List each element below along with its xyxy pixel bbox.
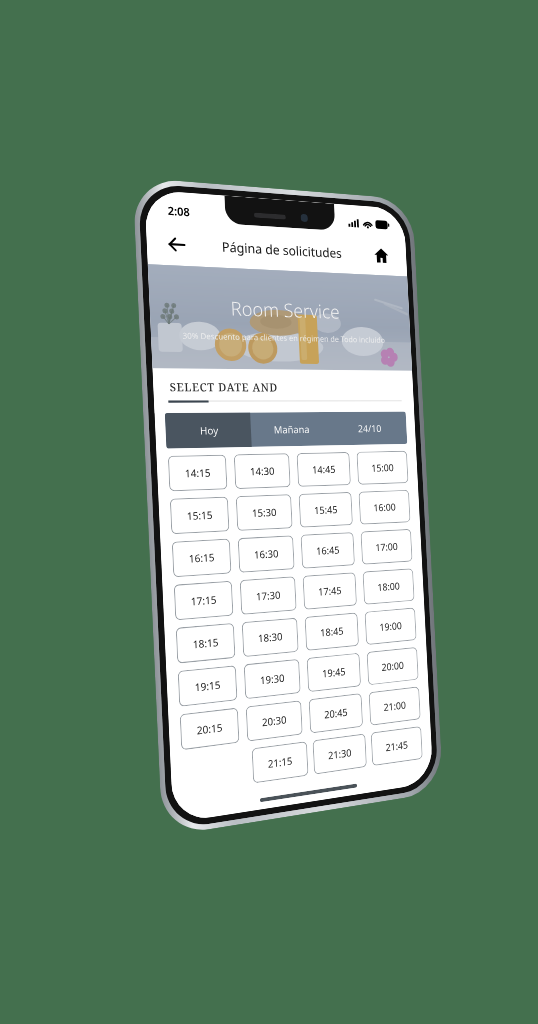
- button[interactable]: 20:30: [246, 700, 303, 742]
- button[interactable]: 17:00: [360, 529, 413, 565]
- staticText: 16:15: [188, 550, 215, 566]
- button[interactable]: 17:45: [302, 572, 357, 610]
- staticText: 19:15: [194, 677, 221, 694]
- staticText: 18:00: [377, 579, 400, 594]
- button[interactable]: Back: [158, 225, 194, 262]
- staticText: 15:45: [314, 502, 338, 517]
- button[interactable]: 21:30: [312, 733, 367, 775]
- staticText: 15:15: [186, 507, 213, 523]
- button[interactable]: 21:00: [369, 686, 421, 726]
- button[interactable]: 20:15: [180, 707, 239, 750]
- staticText: 2:08: [167, 202, 190, 219]
- button[interactable]: 20:00: [366, 647, 419, 685]
- button[interactable]: 24/10: [330, 412, 407, 445]
- staticText: 17:30: [256, 587, 281, 603]
- staticText: Mañana: [273, 422, 310, 436]
- staticText: 15:00: [371, 460, 394, 475]
- staticText: 21:30: [328, 745, 352, 762]
- button[interactable]: 16:45: [300, 532, 355, 569]
- button[interactable]: 19:45: [307, 653, 361, 692]
- button[interactable]: 18:00: [362, 568, 415, 605]
- button[interactable]: 18:45: [304, 612, 359, 651]
- button[interactable]: 18:30: [242, 617, 299, 657]
- staticText: Room Service: [230, 295, 340, 324]
- staticText: 16:00: [373, 500, 396, 514]
- staticText: 19:30: [260, 670, 285, 687]
- button[interactable]: 19:15: [178, 665, 237, 707]
- button[interactable]: 16:15: [172, 538, 231, 577]
- staticText: 20:15: [196, 720, 223, 738]
- staticText: Hoy: [200, 423, 219, 438]
- button[interactable]: 15:15: [170, 496, 229, 534]
- staticText: 17:45: [318, 583, 342, 599]
- button[interactable]: 18:15: [176, 623, 235, 664]
- button[interactable]: 19:00: [364, 607, 417, 645]
- button[interactable]: 17:30: [240, 576, 297, 615]
- staticText: 15:30: [252, 505, 277, 520]
- button[interactable]: 21:45: [371, 726, 423, 766]
- button[interactable]: 14:45: [296, 452, 351, 487]
- staticText: 14:15: [184, 465, 211, 480]
- staticText: 17:00: [375, 539, 398, 554]
- staticText: 18:45: [320, 623, 344, 640]
- button[interactable]: 17:15: [174, 581, 233, 620]
- staticText: 16:30: [254, 546, 279, 562]
- staticText: SELECT DATE AND: [169, 379, 279, 394]
- button[interactable]: 16:00: [358, 490, 410, 525]
- button[interactable]: 20:45: [309, 693, 363, 733]
- staticText: 19:00: [379, 618, 402, 634]
- button[interactable]: Mañana: [250, 412, 332, 447]
- button[interactable]: 14:15: [168, 455, 227, 491]
- button[interactable]: 15:30: [236, 494, 293, 531]
- staticText: 17:15: [190, 592, 217, 609]
- staticText: 20:00: [381, 658, 404, 674]
- staticText: 16:45: [316, 543, 340, 558]
- button[interactable]: Hoy: [165, 413, 252, 449]
- button[interactable]: 15:00: [356, 451, 408, 485]
- staticText: 19:45: [322, 664, 346, 680]
- staticText: 18:15: [192, 635, 219, 652]
- staticText: 21:15: [268, 753, 293, 771]
- staticText: 18:30: [258, 629, 283, 645]
- staticText: 14:30: [250, 464, 275, 478]
- button[interactable]: 14:30: [234, 453, 291, 489]
- staticText: 21:00: [383, 698, 406, 714]
- button[interactable]: 16:30: [238, 535, 295, 573]
- button[interactable]: Home: [366, 238, 397, 272]
- staticText: 14:45: [312, 462, 336, 476]
- button[interactable]: 19:30: [244, 659, 301, 699]
- staticText: 20:30: [262, 712, 287, 729]
- staticText: 20:45: [324, 705, 348, 722]
- staticText: 24/10: [358, 421, 382, 435]
- button[interactable]: 15:45: [298, 492, 353, 528]
- staticText: 21:45: [385, 737, 409, 754]
- button[interactable]: 21:15: [252, 741, 309, 784]
- staticText: Página de solicitudes: [221, 237, 342, 262]
- staticText: 30% Descuento para clientes en régimen d…: [182, 329, 385, 345]
